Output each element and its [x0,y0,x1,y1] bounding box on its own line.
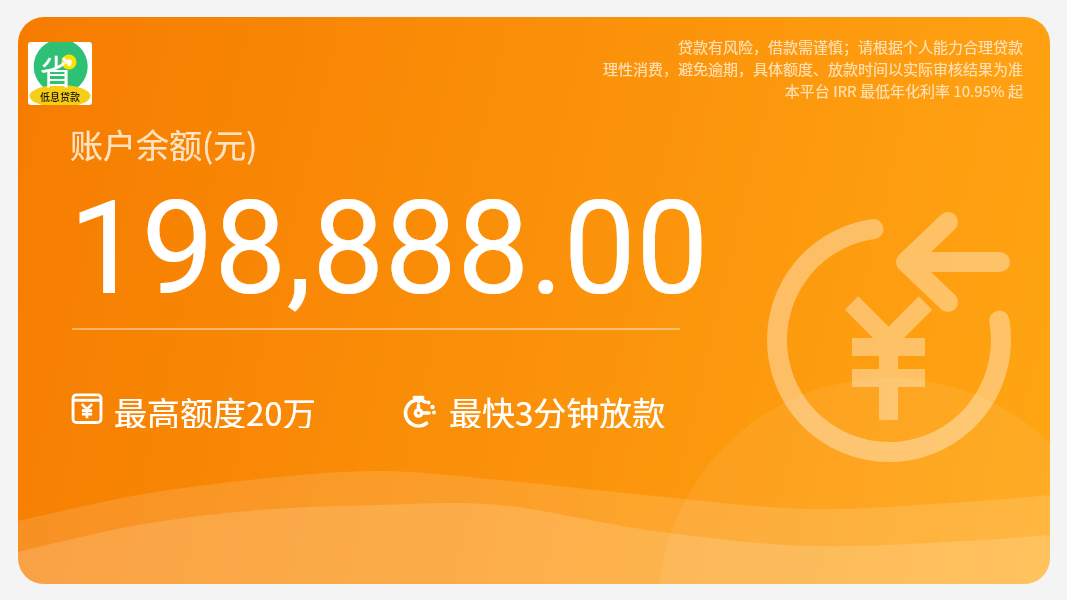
staticText: 低息贷款 [40,89,80,103]
button[interactable]: Loan repayment [18,17,1050,584]
staticText: 最快3分钟放款 [449,388,666,428]
button[interactable]: 省 低息贷款 logo [28,42,92,105]
staticText: 198,888.00 [69,173,709,324]
other: Loan repayment [18,17,1050,584]
staticText: 最高额度20万 [114,388,316,428]
staticText: 本平台 IRR 最低年化利率 10.95% 起 [784,80,1023,102]
staticText: 账户余额(元) [70,120,258,168]
staticText: 理性消费，避免逾期，具体额度、放款时间以实际审核结果为准 [602,58,1023,80]
staticText: 省 [40,46,73,94]
staticText: 贷款有风险，借款需谨慎；请根据个人能力合理贷款 [677,36,1023,58]
button[interactable]: 最快3分钟放款 [402,388,666,428]
button[interactable]: 最高额度20万 [71,388,316,428]
